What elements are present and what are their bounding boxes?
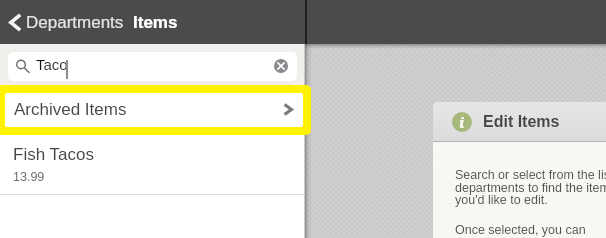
button[interactable]: Clear search <box>274 59 288 73</box>
button[interactable]: Archived Items <box>0 85 304 135</box>
staticText: 13.99 <box>13 170 45 184</box>
button[interactable]: Fish Tacos <box>0 135 304 194</box>
button[interactable]: Departments <box>0 0 128 44</box>
staticText: Once selected, you can <box>455 223 586 237</box>
staticText: Departments <box>26 13 124 32</box>
staticText: Edit Items <box>483 113 560 131</box>
staticText: Taco <box>36 56 68 73</box>
staticText: Items <box>133 13 178 32</box>
staticText: Fish Tacos <box>13 145 94 164</box>
button[interactable]: Taco <box>8 52 297 81</box>
staticText: Archived Items <box>14 100 127 119</box>
staticText: Search or select from the list of depart… <box>455 168 606 207</box>
staticText: i <box>459 112 465 132</box>
